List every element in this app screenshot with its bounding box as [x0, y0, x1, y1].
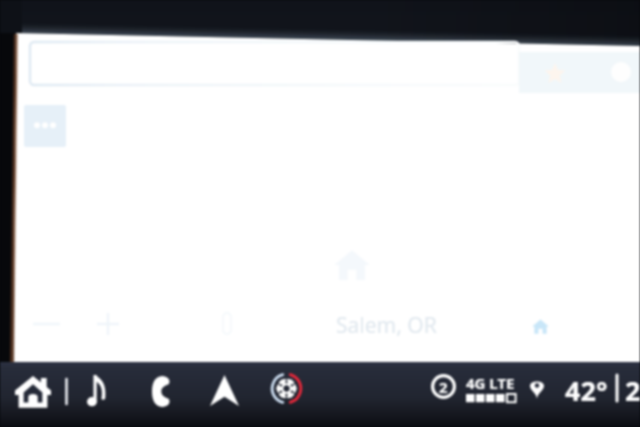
button[interactable]: [30, 42, 519, 85]
staticText: Salem, OR: [336, 311, 437, 340]
button[interactable]: Phone: [152, 376, 170, 407]
button[interactable]: [519, 52, 640, 93]
button[interactable]: Zoom out: [33, 320, 60, 328]
button[interactable]: Zoom in: [97, 313, 119, 335]
button[interactable]: Home destination: [532, 318, 549, 335]
staticText: 2: [439, 377, 448, 397]
button[interactable]: Zone 2: [431, 374, 456, 399]
staticText: 42°: [565, 372, 608, 409]
button[interactable]: Navigation: [210, 375, 239, 406]
staticText: 2: [625, 372, 640, 409]
button[interactable]: More options: [24, 105, 66, 147]
button[interactable]: Climate: [270, 372, 303, 405]
button[interactable]: Location: [530, 378, 544, 399]
button[interactable]: Home: [15, 376, 51, 412]
button[interactable]: Media: [87, 374, 106, 407]
staticText: 4G LTE: [466, 373, 515, 393]
